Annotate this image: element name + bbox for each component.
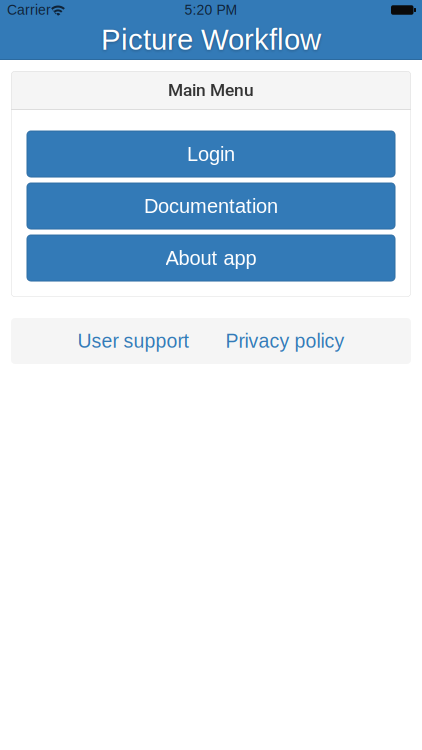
button[interactable]: Privacy policy bbox=[225, 318, 344, 364]
staticText: Picture Workflow bbox=[101, 23, 321, 56]
staticText: Carrier bbox=[7, 2, 51, 18]
staticText: Login bbox=[187, 143, 235, 165]
staticText: Documentation bbox=[144, 195, 278, 217]
staticText: Main Menu bbox=[168, 80, 254, 100]
staticText: Privacy policy bbox=[225, 330, 344, 352]
staticText: User support bbox=[77, 330, 188, 352]
staticText: About app bbox=[165, 247, 256, 269]
staticText: 5:20 PM bbox=[184, 2, 237, 18]
button[interactable]: Documentation bbox=[27, 183, 395, 229]
button[interactable]: User support bbox=[77, 318, 188, 364]
button[interactable]: About app bbox=[27, 235, 395, 281]
button[interactable]: Login bbox=[27, 131, 395, 177]
